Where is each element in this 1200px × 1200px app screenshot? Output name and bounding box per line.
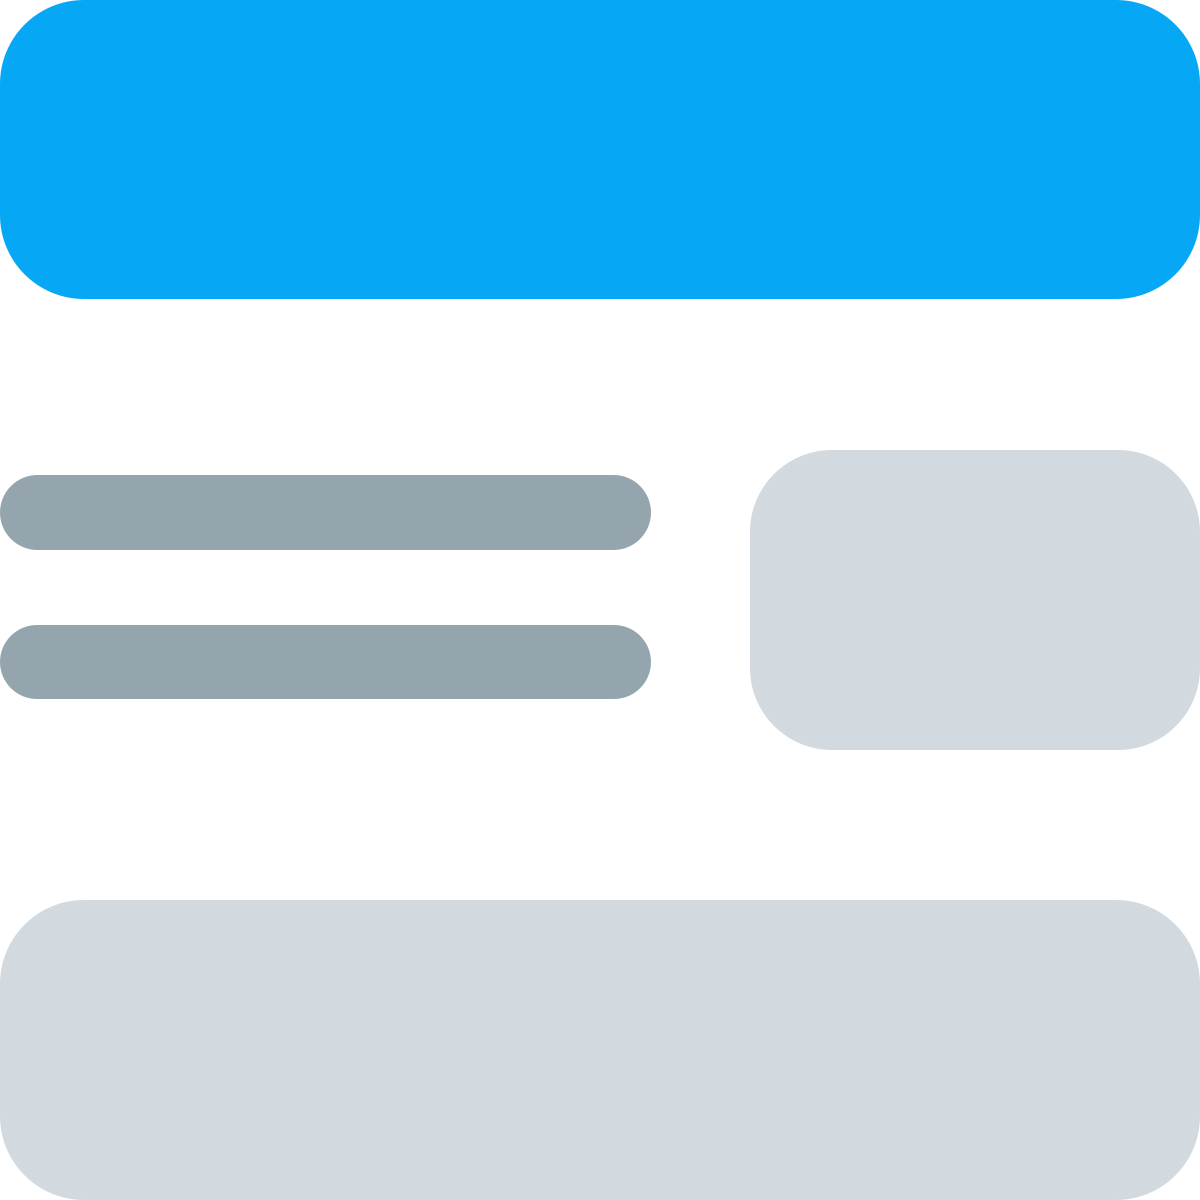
button[interactable]: Story headline — [0, 475, 651, 699]
button[interactable]: Featured banner — [0, 0, 1200, 299]
button[interactable]: Story thumbnail — [750, 450, 1200, 750]
button[interactable]: Content card — [0, 900, 1200, 1200]
